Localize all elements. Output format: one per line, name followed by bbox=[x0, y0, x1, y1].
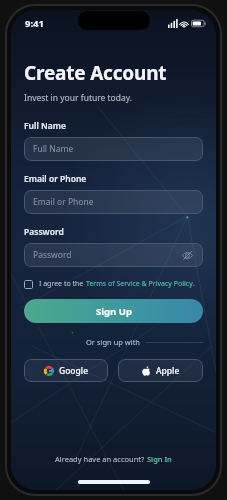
staticText: I agree to the bbox=[39, 279, 86, 289]
button[interactable]: Agree checkbox bbox=[24, 279, 203, 289]
staticText: Password bbox=[33, 249, 72, 261]
staticText: Email or Phone bbox=[24, 173, 87, 185]
button[interactable]: Apple bbox=[118, 359, 203, 382]
button[interactable]: Show password bbox=[180, 248, 194, 262]
staticText: Apple bbox=[156, 365, 180, 377]
staticText: Sign Up bbox=[96, 305, 132, 318]
staticText: Already have an account? bbox=[55, 454, 147, 464]
staticText: Google bbox=[59, 365, 89, 377]
staticText: Sign In bbox=[147, 454, 172, 464]
staticText: Or sign up with bbox=[86, 337, 140, 347]
button[interactable]: Google bbox=[24, 359, 108, 382]
staticText: Password bbox=[24, 226, 64, 238]
staticText: Invest in your future today. bbox=[24, 92, 133, 104]
button[interactable]: Email or Phone bbox=[24, 190, 203, 214]
button[interactable]: Sign In bbox=[147, 454, 172, 464]
staticText: Full Name bbox=[33, 143, 74, 155]
button[interactable]: Password bbox=[24, 243, 203, 267]
staticText: . bbox=[193, 279, 195, 289]
staticText: Terms of Service & Privacy Policy bbox=[86, 279, 193, 289]
staticText: Email or Phone bbox=[33, 196, 94, 208]
staticText: Create Account bbox=[24, 60, 167, 86]
button[interactable]: Sign Up bbox=[24, 299, 203, 323]
staticText: 9:41 bbox=[25, 17, 44, 30]
button[interactable]: Full Name bbox=[24, 137, 203, 161]
other: Agree checkbox bbox=[24, 280, 33, 289]
staticText: Full Name bbox=[24, 120, 66, 132]
